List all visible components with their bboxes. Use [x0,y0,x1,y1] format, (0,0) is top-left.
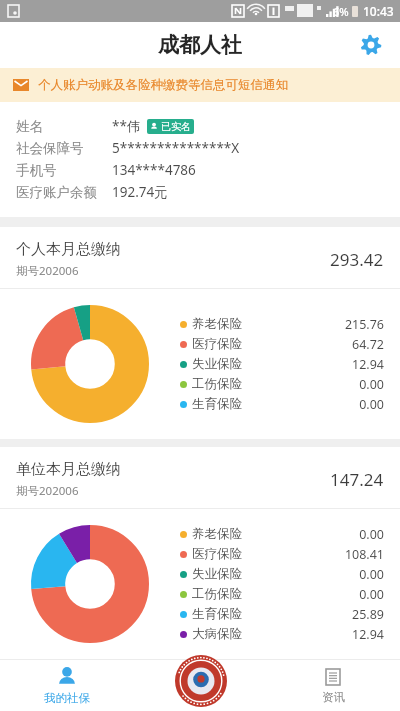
staticText: **伟 [112,117,141,135]
staticText: 0.00 [359,526,384,543]
staticText: 期号202006 [16,483,79,499]
staticText: 64.72 [352,336,384,353]
staticText: 我的社保 [44,691,90,705]
staticText: 生育保险 [192,606,242,622]
staticText: 资讯 [322,690,345,704]
staticText: 个人账户动账及各险种缴费等信息可短信通知 [38,77,288,93]
staticText: 大病保险 [192,626,242,642]
staticText: 社会保障号 [16,140,84,157]
staticText: 12.94 [352,626,384,643]
staticText: 12.94 [352,356,384,373]
button[interactable]: 个人账户动账及各险种缴费等信息可短信通知 [0,68,400,102]
staticText: 失业保险 [192,566,242,582]
staticText: 0.00 [359,376,384,393]
staticText: 293.42 [330,248,384,271]
staticText: 失业保险 [192,356,242,372]
staticText: 工伤保险 [192,586,242,602]
staticText: 0.00 [359,396,384,413]
staticText: 个人本月总缴纳 [16,240,121,259]
staticText: 25.89 [352,606,384,623]
button[interactable]: 社保卡 [134,659,267,711]
staticText: 10:43 [363,3,394,19]
staticText: 养老保险 [192,316,242,332]
staticText: 108.41 [344,546,384,563]
staticText: 192.74元 [112,183,168,201]
staticText: 成都人社 [158,32,242,58]
staticText: 养老保险 [192,526,242,542]
staticText: 147.24 [330,468,384,491]
button[interactable]: 资讯 [267,659,400,711]
staticText: 已实名 [161,120,191,133]
staticText: 医疗账户余额 [16,184,97,201]
button[interactable]: 我的社保 [0,659,134,711]
staticText: 姓名 [16,118,43,135]
staticText: 工伤保险 [192,376,242,392]
staticText: 手机号 [16,162,57,179]
staticText: 215.76 [344,316,384,333]
staticText: 医疗保险 [192,546,242,562]
staticText: 0.00 [359,566,384,583]
staticText: 6% [333,4,349,19]
staticText: 医疗保险 [192,336,242,352]
staticText: 期号202006 [16,263,79,279]
staticText: 生育保险 [192,396,242,412]
staticText: 单位本月总缴纳 [16,460,121,479]
staticText: 134****4786 [112,161,196,179]
staticText: 5***************X [112,139,240,157]
button[interactable]: 设置 [354,28,388,62]
staticText: 0.00 [359,586,384,603]
